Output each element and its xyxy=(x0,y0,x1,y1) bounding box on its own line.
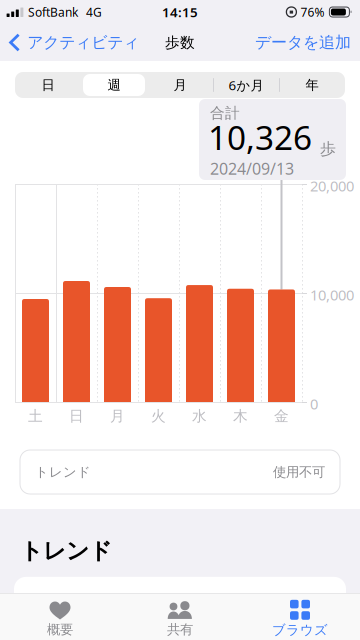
staticText: 日 xyxy=(41,77,54,93)
staticText: 14:15 xyxy=(162,3,198,21)
button[interactable]: トレンド xyxy=(20,450,340,494)
staticText: 土 xyxy=(28,407,43,425)
staticText: 概要 xyxy=(47,621,73,638)
staticText: 2024/09/13 xyxy=(210,158,294,179)
button[interactable]: 6か月 xyxy=(213,72,279,98)
staticText: 日 xyxy=(69,407,84,425)
staticText: 合計 xyxy=(210,104,240,122)
staticText: 6か月 xyxy=(228,76,263,94)
staticText: 4G xyxy=(86,4,102,20)
staticText: 木 xyxy=(233,407,248,425)
staticText: 10,326 xyxy=(208,115,312,159)
staticText: SoftBank xyxy=(28,4,78,20)
button[interactable]: 年 xyxy=(279,72,345,98)
button[interactable]: 共有 xyxy=(120,595,240,638)
staticText: 使用不可 xyxy=(273,464,325,480)
staticText: トレンド xyxy=(20,537,112,565)
staticText: 歩数 xyxy=(165,33,195,51)
button[interactable]: ブラウズ xyxy=(240,595,360,638)
staticText: 月 xyxy=(110,407,125,425)
button[interactable]: データを追加 xyxy=(249,24,360,60)
staticText: 10,000 xyxy=(310,285,354,304)
staticText: 20,000 xyxy=(310,176,354,195)
staticText: アクティビティ xyxy=(27,33,139,52)
staticText: ブラウズ xyxy=(272,622,328,638)
staticText: 共有 xyxy=(167,621,193,638)
staticText: 76% xyxy=(300,4,324,20)
staticText: 水 xyxy=(192,407,207,425)
button[interactable]: 日 xyxy=(15,72,81,98)
staticText: 火 xyxy=(151,407,166,425)
staticText: 歩 xyxy=(320,139,336,159)
staticText: トレンド xyxy=(35,464,91,480)
button[interactable]: 概要 xyxy=(0,595,120,638)
staticText: 年 xyxy=(305,77,318,93)
staticText: 週 xyxy=(107,77,120,93)
button[interactable]: 月 xyxy=(147,72,213,98)
staticText: 月 xyxy=(173,77,186,93)
button[interactable]: 週 xyxy=(81,72,147,98)
staticText: データを追加 xyxy=(255,33,351,52)
button[interactable]: アクティビティ xyxy=(0,24,145,60)
staticText: 0 xyxy=(310,394,318,413)
staticText: 金 xyxy=(274,407,289,425)
